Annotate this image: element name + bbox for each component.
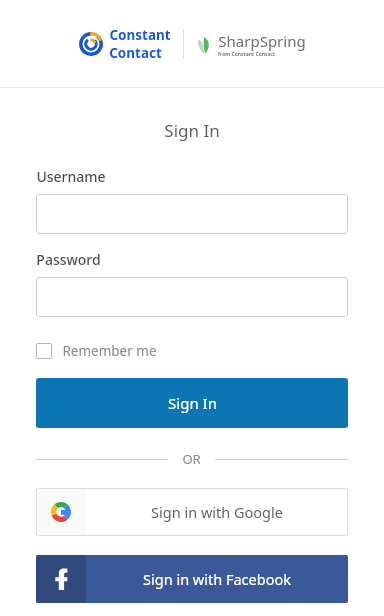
staticText: SharpSpring	[218, 31, 306, 51]
staticText: Contact	[109, 44, 162, 62]
button[interactable]: Sign in with Facebook	[36, 555, 348, 603]
staticText: Sign In	[164, 119, 220, 142]
button[interactable]: Remember me	[36, 340, 157, 362]
staticText: Password	[36, 250, 101, 269]
button[interactable]: Text input field	[36, 277, 348, 317]
staticText: Remember me	[62, 342, 157, 360]
staticText: Sign In	[168, 393, 217, 413]
staticText: OR	[182, 450, 201, 468]
staticText: Sign in with Google	[151, 502, 283, 522]
button[interactable]: Sign In	[36, 378, 348, 428]
staticText: Username	[36, 167, 106, 186]
staticText: from Constant Contact	[218, 51, 275, 58]
staticText: Sign in with Facebook	[143, 569, 291, 589]
button[interactable]: Text input field	[36, 194, 348, 234]
button[interactable]: Sign in with Google	[36, 488, 348, 536]
staticText: Constant	[109, 26, 171, 44]
